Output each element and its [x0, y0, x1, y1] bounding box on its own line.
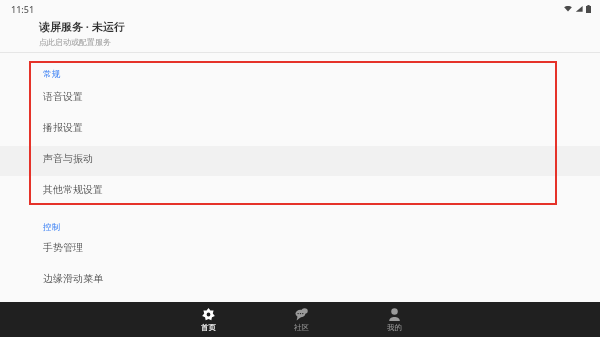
- button[interactable]: 社区: [273, 302, 329, 337]
- staticText: 社区: [294, 323, 309, 332]
- staticText: 点此启动或配置服务: [39, 37, 111, 47]
- other: 首页: [202, 308, 215, 321]
- other: 我的: [388, 308, 401, 321]
- staticText: 首页: [201, 323, 216, 332]
- staticText: 读屏服务 · 未运行: [39, 19, 125, 34]
- button[interactable]: 语音设置: [0, 81, 600, 111]
- button[interactable]: 手势管理: [0, 232, 600, 262]
- button[interactable]: 读屏服务 · 未运行: [39, 19, 125, 47]
- staticText: 常规: [43, 69, 60, 80]
- button[interactable]: 我的: [366, 302, 422, 337]
- button[interactable]: 播报设置: [0, 112, 600, 142]
- other: 社区: [295, 308, 308, 321]
- staticText: 边缘滑动菜单: [43, 272, 103, 285]
- staticText: 其他常规设置: [43, 183, 103, 196]
- staticText: 我的: [387, 323, 402, 332]
- staticText: 11:51: [11, 3, 35, 15]
- staticText: 手势管理: [43, 241, 83, 254]
- button[interactable]: 其他常规设置: [0, 174, 600, 204]
- staticText: 声音与振动: [43, 152, 93, 165]
- staticText: 播报设置: [43, 121, 83, 134]
- staticText: 语音设置: [43, 90, 83, 103]
- button[interactable]: 首页: [180, 302, 236, 337]
- staticText: 控制: [43, 222, 60, 233]
- button[interactable]: 声音与振动: [0, 143, 600, 173]
- button[interactable]: 边缘滑动菜单: [0, 263, 600, 293]
